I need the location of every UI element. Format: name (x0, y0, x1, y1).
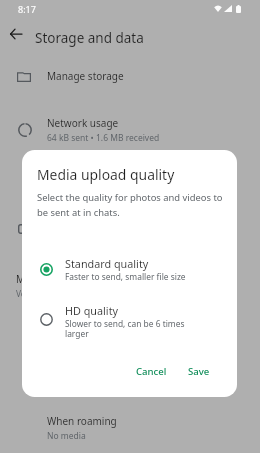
staticText: Faster to send, smaller file size (65, 271, 186, 282)
staticText: Network usage (47, 116, 119, 130)
staticText: No media (47, 430, 86, 442)
staticText: Save (188, 365, 210, 378)
button[interactable]: Save (183, 360, 215, 383)
staticText: Voice messages (16, 288, 79, 299)
button[interactable]: Network usage (0, 114, 260, 146)
staticText: Slower to send, can be 6 times larger (65, 318, 185, 339)
staticText: 8:17 (18, 3, 36, 15)
staticText: Media upload quality (16, 272, 115, 286)
staticText: Cancel (136, 365, 167, 378)
button[interactable]: Back (4, 22, 28, 46)
staticText: Storage and data (35, 29, 144, 47)
staticText: Manage storage (47, 69, 124, 83)
button[interactable]: Manage storage (0, 62, 260, 90)
staticText: When roaming (47, 414, 117, 428)
staticText: Standard quality (65, 256, 149, 271)
staticText: Select the quality for photos and videos… (37, 191, 223, 219)
button[interactable]: Cancel (131, 360, 172, 383)
button[interactable]: HD quality (22, 302, 237, 342)
button[interactable] (0, 216, 260, 242)
button[interactable]: Standard quality (22, 252, 237, 286)
staticText: HD quality (65, 303, 119, 318)
staticText: Media upload quality (37, 165, 175, 184)
staticText: 64 kB sent • 1.6 MB received (47, 132, 160, 144)
